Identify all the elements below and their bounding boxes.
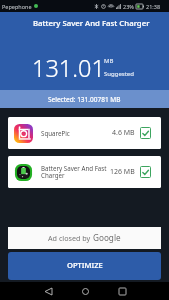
staticText: Battery Saver And Fast Charger bbox=[33, 18, 150, 29]
staticText: Ad closed by bbox=[48, 233, 93, 243]
staticText: Pepephone bbox=[2, 3, 32, 10]
staticText: MB bbox=[104, 57, 114, 65]
button[interactable]: Back bbox=[39, 282, 57, 300]
staticText: Selected: 131.00781 MB bbox=[48, 95, 121, 104]
button[interactable]: Ad closed by bbox=[8, 227, 161, 249]
button[interactable]: OPTIMIZE bbox=[8, 252, 161, 280]
button[interactable]: Home bbox=[76, 282, 94, 300]
staticText: OPTIMIZE bbox=[67, 260, 103, 270]
staticText: 126 MB bbox=[110, 167, 135, 177]
button[interactable]: Recent apps bbox=[113, 282, 131, 300]
staticText: 4.6 MB bbox=[112, 128, 135, 138]
staticText: 131.01 bbox=[32, 52, 105, 84]
staticText: Suggested bbox=[104, 70, 134, 78]
staticText: 21:38 bbox=[146, 3, 161, 10]
staticText: Google bbox=[93, 232, 121, 243]
staticText: 23% bbox=[123, 3, 134, 10]
button[interactable]: SquarePic bbox=[8, 117, 161, 149]
staticText: SquarePic bbox=[41, 129, 70, 137]
staticText: Battery Saver And Fast Charger bbox=[41, 164, 107, 180]
button[interactable]: Battery Saver And Fast Charger bbox=[8, 156, 161, 188]
